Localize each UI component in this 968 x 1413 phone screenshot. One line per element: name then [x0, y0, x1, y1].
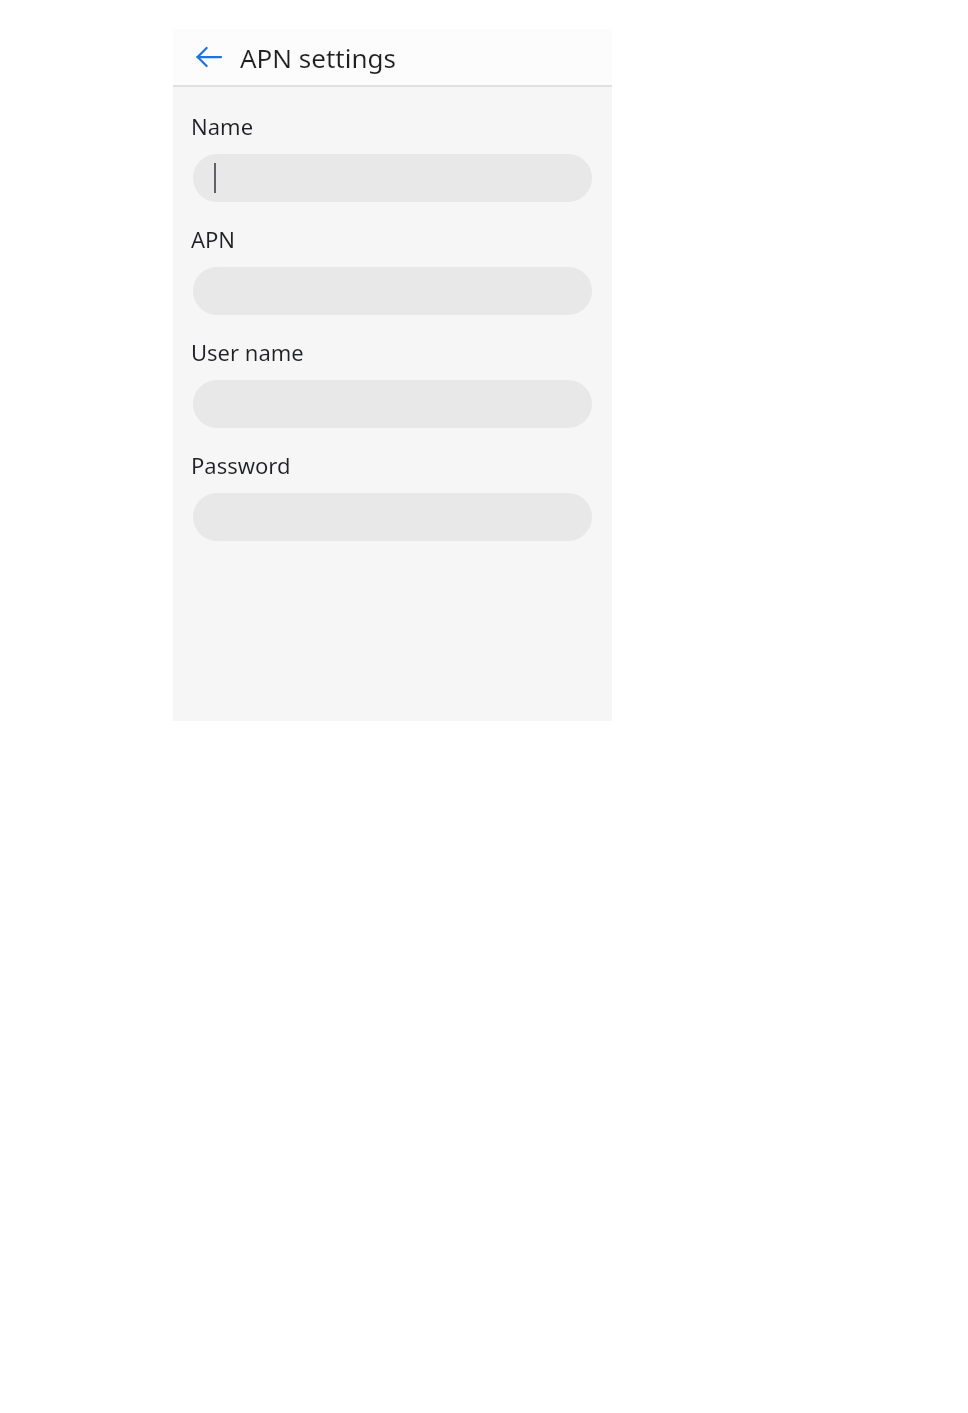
staticText: Password	[191, 450, 291, 480]
staticText: Name	[191, 111, 254, 141]
button[interactable]: Back	[190, 38, 228, 76]
button[interactable]	[193, 154, 592, 202]
staticText: APN settings	[240, 40, 396, 75]
staticText: APN	[191, 224, 236, 254]
staticText: User name	[191, 337, 304, 367]
